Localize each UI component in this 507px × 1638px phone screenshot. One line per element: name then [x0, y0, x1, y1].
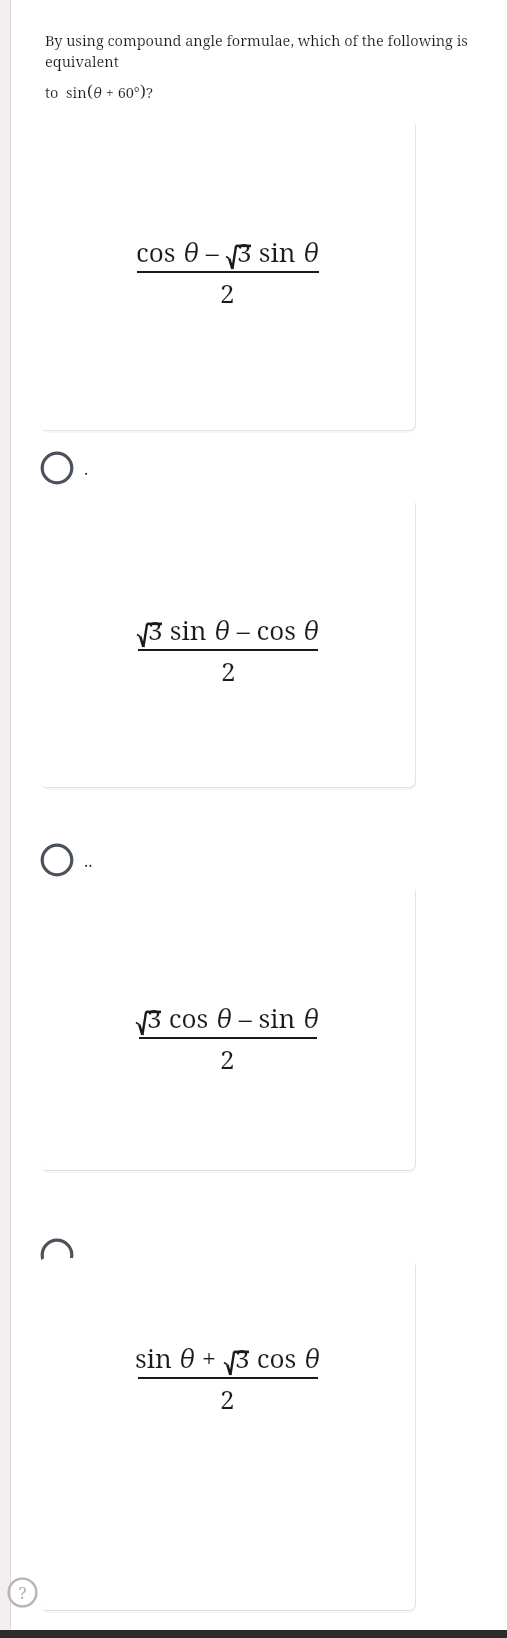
staticText: θ: [303, 1000, 319, 1035]
staticText: 3: [237, 234, 252, 269]
staticText: θ: [304, 1340, 320, 1375]
staticText: θ: [179, 1340, 195, 1375]
staticText: 3: [147, 1000, 162, 1035]
staticText: θ: [93, 82, 102, 102]
staticText: θ: [303, 234, 319, 269]
staticText: to sin: [45, 82, 87, 102]
staticText: θ: [183, 234, 199, 269]
staticText: cos: [162, 1000, 216, 1035]
staticText: 3: [235, 1340, 250, 1375]
staticText: ): [140, 79, 146, 102]
staticText: (: [87, 79, 93, 102]
staticText: cos: [250, 1340, 304, 1375]
staticText: +: [195, 1340, 224, 1375]
staticText: 2: [220, 275, 235, 310]
staticText: sin: [163, 612, 214, 647]
staticText: 2: [220, 1381, 235, 1416]
button[interactable]: ..: [40, 838, 240, 882]
staticText: .: [84, 457, 89, 480]
staticText: + 60°: [102, 82, 140, 102]
button[interactable]: [40, 1258, 415, 1610]
staticText: ?: [18, 1581, 27, 1604]
button[interactable]: [40, 497, 415, 787]
staticText: 2: [220, 1041, 235, 1076]
button[interactable]: Help: [7, 1577, 38, 1608]
staticText: θ: [214, 612, 230, 647]
button[interactable]: .: [40, 446, 240, 490]
button[interactable]: [40, 884, 415, 1170]
staticText: –: [199, 234, 226, 269]
staticText: – sin: [232, 1000, 303, 1035]
staticText: 3: [148, 612, 163, 647]
staticText: θ: [216, 1000, 232, 1035]
button[interactable]: [40, 118, 415, 430]
staticText: sin: [135, 1340, 179, 1375]
staticText: θ: [303, 612, 319, 647]
staticText: By using compound angle formulae, which …: [45, 30, 475, 72]
staticText: 2: [221, 653, 236, 688]
staticText: cos: [136, 234, 183, 269]
staticText: sin: [252, 234, 303, 269]
button[interactable]: ...: [40, 1233, 240, 1277]
staticText: ..: [84, 849, 93, 872]
staticText: – cos: [230, 612, 303, 647]
staticText: ?: [146, 82, 153, 102]
